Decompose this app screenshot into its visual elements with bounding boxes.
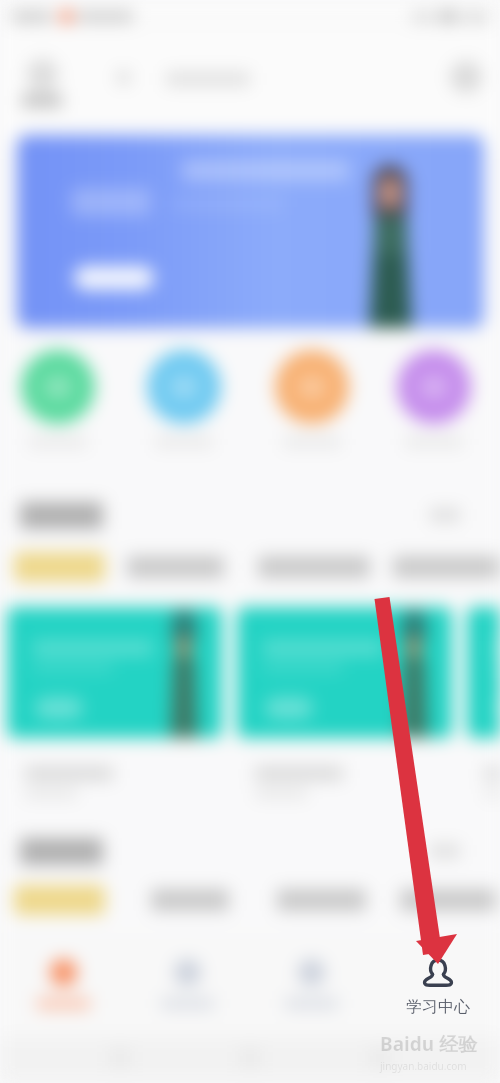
button[interactable]	[400, 889, 496, 911]
button[interactable]	[249, 933, 373, 1036]
button[interactable]	[394, 350, 474, 448]
button[interactable]	[14, 885, 105, 915]
button[interactable]	[467, 607, 500, 798]
button[interactable]	[237, 607, 452, 798]
button[interactable]	[125, 933, 249, 1036]
button[interactable]: Scan	[450, 61, 482, 93]
button[interactable]	[127, 556, 224, 578]
button[interactable]	[272, 350, 352, 448]
staticText: Baidu 经验	[380, 1031, 477, 1057]
button[interactable]	[1, 933, 125, 1036]
button[interactable]	[258, 556, 370, 578]
button[interactable]	[277, 889, 366, 911]
button[interactable]	[375, 933, 500, 1036]
button[interactable]	[18, 350, 98, 448]
button[interactable]	[7, 607, 222, 798]
button[interactable]: 学习中心	[375, 958, 500, 1017]
button[interactable]	[144, 350, 224, 448]
staticText: 学习中心	[406, 997, 470, 1017]
button[interactable]	[393, 556, 500, 578]
button[interactable]: Profile	[22, 59, 62, 107]
button[interactable]	[151, 889, 229, 911]
button[interactable]	[14, 552, 105, 582]
staticText: jingyan.baidu.com	[380, 1059, 467, 1073]
button[interactable]	[17, 135, 484, 328]
button[interactable]	[371, 1049, 389, 1067]
button[interactable]	[74, 266, 154, 290]
